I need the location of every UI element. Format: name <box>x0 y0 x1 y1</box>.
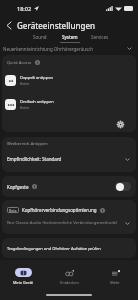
staticText: Keine <box>20 105 30 110</box>
staticText: Geräteeinstellungen <box>17 20 96 31</box>
button[interactable]: Neuerkennteinrichtung Ohrhörergeräusch <box>0 44 138 53</box>
staticText: Weitbereich-Antippen <box>7 141 48 146</box>
button[interactable]: Services <box>85 33 115 44</box>
button[interactable]: Beta <box>2 200 136 234</box>
staticText: Kopfgeste <box>7 184 29 190</box>
staticText: Tragebedingungen und Ohrhörer Aufsätze p… <box>7 246 101 251</box>
staticText: Neuerkennteinrichtung Ohrhörergeräusch <box>3 46 94 52</box>
staticText: Kopfhörerverbindungsoptimierung <box>22 207 97 213</box>
button[interactable]: System <box>55 33 85 44</box>
button[interactable]: Mehr <box>92 268 138 285</box>
button[interactable]: Zurück <box>2 19 15 32</box>
button[interactable]: Doppelt antippen <box>2 68 136 92</box>
button[interactable]: Sound <box>24 33 55 44</box>
other: Info <box>32 184 37 189</box>
button[interactable]: Entdecken <box>46 268 92 285</box>
staticText: Services <box>91 34 109 40</box>
button[interactable]: Empfindlichkeit: Standard <box>2 146 136 172</box>
staticText: System <box>62 34 78 40</box>
button[interactable]: Mein Gerät <box>0 268 46 285</box>
other: Info <box>100 208 105 213</box>
staticText: Nur Classic Audio (herkömmliche Verbindu… <box>7 220 118 226</box>
staticText: Entdecken <box>60 280 79 285</box>
button[interactable]: Dreifach antippen <box>2 92 136 116</box>
staticText: Beta <box>9 208 17 213</box>
staticText: Mein Gerät <box>13 280 33 285</box>
staticText: Keine <box>20 81 30 86</box>
staticText: Empfindlichkeit: Standard <box>7 156 62 162</box>
staticText: Doppelt antippen <box>20 75 53 80</box>
staticText: Quick Access <box>7 60 32 65</box>
button[interactable] <box>115 182 131 191</box>
staticText: Sound <box>33 34 47 40</box>
other: Info <box>35 60 40 65</box>
staticText: Dreifach antippen <box>20 99 54 104</box>
button[interactable]: Nur Classic Audio (herkömmliche Verbindu… <box>7 217 131 229</box>
staticText: 18:02 <box>17 5 32 12</box>
button[interactable]: Kopfgeste <box>2 176 136 197</box>
button[interactable]: Einstellungen <box>116 120 125 129</box>
staticText: Mehr <box>110 280 120 285</box>
button[interactable]: Tragebedingungen und Ohrhörer Aufsätze p… <box>2 238 136 258</box>
